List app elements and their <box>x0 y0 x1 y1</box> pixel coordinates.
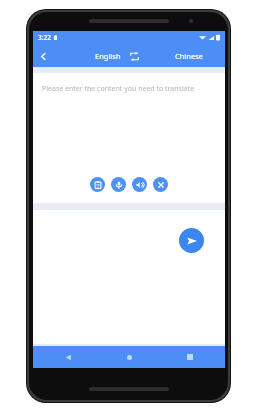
button[interactable]: Clear text <box>153 177 168 192</box>
staticText: 3:22 <box>38 33 51 42</box>
button[interactable]: Recents <box>181 348 199 366</box>
button[interactable]: Back <box>33 46 53 66</box>
button[interactable]: English <box>95 51 121 61</box>
button[interactable]: Swap languages <box>126 48 142 64</box>
button[interactable]: Translate <box>179 228 204 253</box>
button[interactable]: Back <box>59 348 77 366</box>
button[interactable]: Chinese <box>175 51 203 61</box>
button[interactable]: Home <box>120 348 138 366</box>
staticText: English <box>95 51 121 61</box>
staticText: Chinese <box>175 51 203 61</box>
button[interactable]: Paste <box>90 177 105 192</box>
staticText: Please enter the content you need to tra… <box>42 84 195 94</box>
button[interactable]: Speak aloud <box>132 177 147 192</box>
button[interactable]: Voice input <box>111 177 126 192</box>
